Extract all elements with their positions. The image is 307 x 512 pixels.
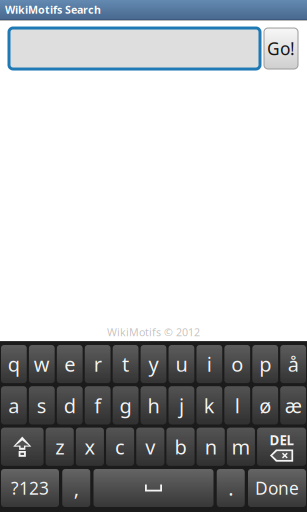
staticText: h bbox=[147, 392, 159, 419]
staticText: . bbox=[228, 475, 233, 501]
button[interactable]: z bbox=[46, 428, 74, 466]
button[interactable]: h bbox=[141, 386, 166, 424]
staticText: x bbox=[84, 433, 95, 460]
staticText: b bbox=[174, 433, 186, 460]
button[interactable]: å bbox=[280, 345, 306, 383]
button[interactable]: Delete bbox=[257, 428, 306, 466]
button[interactable]: b bbox=[166, 428, 194, 466]
staticText: k bbox=[204, 392, 215, 419]
staticText: DEL bbox=[270, 431, 294, 449]
staticText: m bbox=[231, 433, 250, 460]
staticText: o bbox=[231, 351, 243, 377]
staticText: Go! bbox=[267, 37, 295, 60]
button[interactable]: æ bbox=[280, 386, 306, 424]
staticText: i bbox=[207, 351, 212, 377]
staticText: ?123 bbox=[11, 476, 49, 499]
button[interactable]: i bbox=[196, 345, 222, 383]
button[interactable]: t bbox=[113, 345, 138, 383]
staticText: ø bbox=[259, 392, 271, 419]
staticText: u bbox=[175, 351, 187, 377]
button[interactable]: d bbox=[57, 386, 83, 424]
button[interactable]: x bbox=[76, 428, 104, 466]
staticText: j bbox=[179, 392, 184, 419]
button[interactable]: e bbox=[57, 345, 83, 383]
button[interactable]: ?123 bbox=[1, 469, 59, 507]
staticText: z bbox=[55, 433, 64, 460]
staticText: c bbox=[115, 433, 125, 460]
staticText: w bbox=[34, 351, 50, 377]
button[interactable]: . bbox=[217, 469, 245, 507]
staticText: WikiMotifs © 2012 bbox=[107, 325, 200, 339]
button[interactable]: q bbox=[1, 345, 27, 383]
button[interactable]: v bbox=[136, 428, 164, 466]
staticText: WikiMotifs Search bbox=[5, 2, 101, 17]
button[interactable]: , bbox=[62, 469, 90, 507]
staticText: æ bbox=[285, 392, 302, 419]
staticText: , bbox=[74, 475, 79, 501]
staticText: Done bbox=[255, 476, 299, 499]
staticText: g bbox=[120, 392, 132, 419]
button[interactable]: w bbox=[29, 345, 55, 383]
staticText: å bbox=[288, 351, 299, 377]
button[interactable]: n bbox=[197, 428, 225, 466]
button[interactable]: Done bbox=[248, 469, 306, 507]
staticText: r bbox=[94, 351, 102, 377]
button[interactable]: s bbox=[29, 386, 55, 424]
staticText: a bbox=[8, 392, 19, 419]
button[interactable]: o bbox=[224, 345, 250, 383]
button[interactable]: p bbox=[252, 345, 278, 383]
button[interactable]: a bbox=[1, 386, 27, 424]
staticText: f bbox=[94, 392, 101, 419]
button[interactable]: c bbox=[106, 428, 134, 466]
button[interactable]: f bbox=[85, 386, 110, 424]
staticText: y bbox=[148, 351, 158, 377]
button[interactable]: ø bbox=[252, 386, 278, 424]
button[interactable]: g bbox=[113, 386, 138, 424]
button[interactable]: j bbox=[169, 386, 194, 424]
button[interactable]: Space bbox=[93, 469, 213, 507]
staticText: v bbox=[145, 433, 155, 460]
button[interactable]: u bbox=[169, 345, 194, 383]
button[interactable]: Shift bbox=[1, 428, 43, 466]
staticText: l bbox=[235, 392, 240, 419]
staticText: n bbox=[205, 433, 217, 460]
button[interactable]: k bbox=[196, 386, 222, 424]
staticText: p bbox=[259, 351, 271, 377]
staticText: d bbox=[64, 392, 76, 419]
staticText: q bbox=[8, 351, 20, 377]
button[interactable]: y bbox=[141, 345, 166, 383]
staticText: e bbox=[64, 351, 75, 377]
button[interactable]: l bbox=[224, 386, 250, 424]
button[interactable]: m bbox=[227, 428, 255, 466]
button[interactable]: Go! bbox=[264, 28, 298, 69]
staticText: t bbox=[122, 351, 129, 377]
staticText: s bbox=[37, 392, 47, 419]
button[interactable]: r bbox=[85, 345, 110, 383]
